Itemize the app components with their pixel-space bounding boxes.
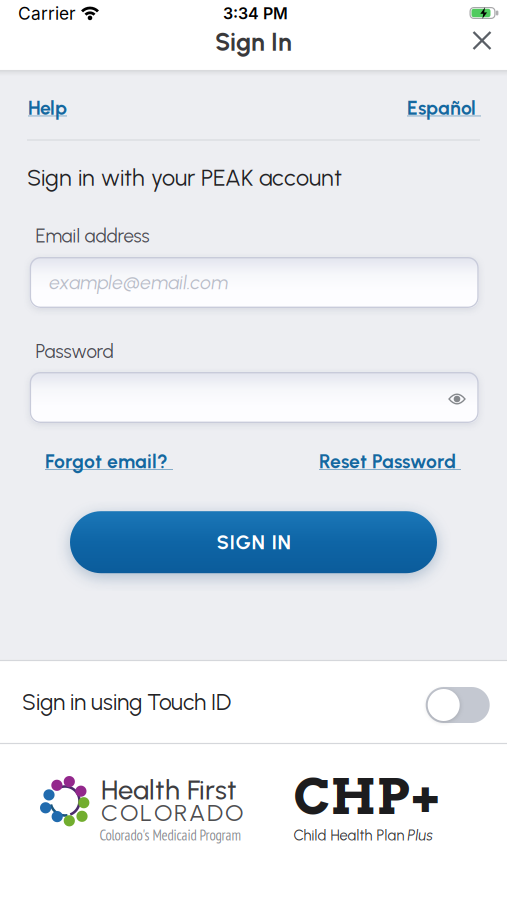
button[interactable]: Reset Password	[319, 450, 461, 473]
staticText: Help	[28, 96, 67, 120]
staticText: example@email.com	[49, 271, 228, 294]
staticText: Email address	[35, 225, 149, 247]
staticText: Sign In	[215, 27, 292, 57]
button[interactable]: Password	[30, 372, 479, 423]
staticText: Reset Password	[319, 450, 461, 473]
staticText: 3:34 PM	[223, 4, 288, 23]
button[interactable]: Email address	[30, 257, 479, 308]
staticText: Child Health Plan	[293, 827, 404, 844]
button[interactable]: Help	[28, 96, 67, 120]
staticText: S I G N I N	[216, 530, 290, 554]
staticText: Password	[35, 340, 113, 363]
staticText: Forgot email?	[45, 450, 173, 473]
button[interactable]: Show password	[439, 381, 475, 417]
button[interactable]: Forgot email?	[45, 450, 173, 473]
staticText: Sign in with your PEAK account	[27, 163, 342, 191]
button[interactable]: S I G N I N	[70, 511, 437, 573]
staticText: CHP+	[293, 767, 440, 826]
staticText: Carrier	[18, 3, 76, 24]
staticText: Plus	[407, 827, 432, 844]
button[interactable]: Close	[460, 18, 504, 62]
staticText: Health First	[101, 774, 237, 806]
button[interactable]: Sign in using Touch ID	[426, 687, 490, 723]
button[interactable]: Español	[407, 96, 481, 120]
staticText: Colorado's Medicaid Program	[99, 825, 241, 844]
staticText: C O L O R A D O	[101, 798, 243, 827]
staticText: Sign in using Touch ID	[22, 688, 231, 716]
staticText: Español	[407, 96, 481, 120]
